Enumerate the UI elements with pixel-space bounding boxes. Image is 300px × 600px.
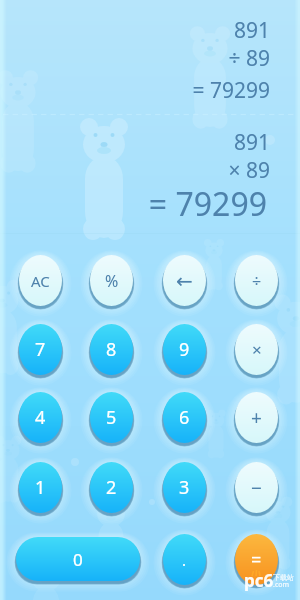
button[interactable]: 1 [19, 462, 62, 513]
button[interactable]: 3 [163, 462, 206, 513]
button[interactable]: Minus [235, 462, 278, 513]
staticText: − [251, 475, 262, 501]
staticText: ÷ 89 [0, 44, 270, 73]
button[interactable]: 4 [19, 392, 62, 443]
staticText: 6 [179, 405, 190, 430]
staticText: 891 [0, 16, 270, 45]
staticText: = 79299 [0, 76, 270, 105]
button[interactable]: AC [19, 255, 62, 306]
staticText: 2 [106, 475, 117, 500]
button[interactable]: 5 [90, 392, 133, 443]
button[interactable]: Divide [235, 255, 278, 306]
staticText: AC [31, 271, 50, 291]
staticText: 3 [179, 475, 190, 500]
staticText: 0 [73, 548, 83, 571]
button[interactable]: 0 [16, 537, 140, 581]
staticText: 891 [0, 128, 270, 157]
button[interactable]: 8 [90, 324, 133, 375]
button[interactable]: % [90, 255, 133, 306]
staticText: 7 [35, 337, 46, 362]
staticText: + [251, 405, 262, 431]
staticText: % [105, 270, 119, 292]
staticText: = 79299 [0, 182, 267, 226]
button[interactable]: 7 [19, 324, 62, 375]
button[interactable]: Plus [235, 392, 278, 443]
staticText: 4 [35, 405, 46, 430]
button[interactable]: 6 [163, 392, 206, 443]
button[interactable]: Multiply [235, 324, 278, 375]
button[interactable]: . [163, 534, 206, 585]
staticText: 下载站 .com [273, 573, 294, 590]
staticText: 8 [106, 337, 117, 362]
button[interactable]: Delete [163, 255, 206, 306]
staticText: 5 [106, 405, 117, 430]
staticText: pc6 [244, 569, 274, 592]
staticText: = [251, 547, 262, 572]
staticText: × [252, 338, 262, 361]
staticText: × 89 [0, 156, 270, 185]
button[interactable]: 2 [90, 462, 133, 513]
staticText: ← [176, 269, 193, 292]
staticText: 1 [35, 475, 46, 500]
button[interactable]: 9 [163, 324, 206, 375]
staticText: 9 [179, 337, 190, 362]
staticText: . [182, 550, 187, 570]
staticText: ÷ [252, 270, 262, 292]
button[interactable]: Equals [235, 534, 278, 585]
